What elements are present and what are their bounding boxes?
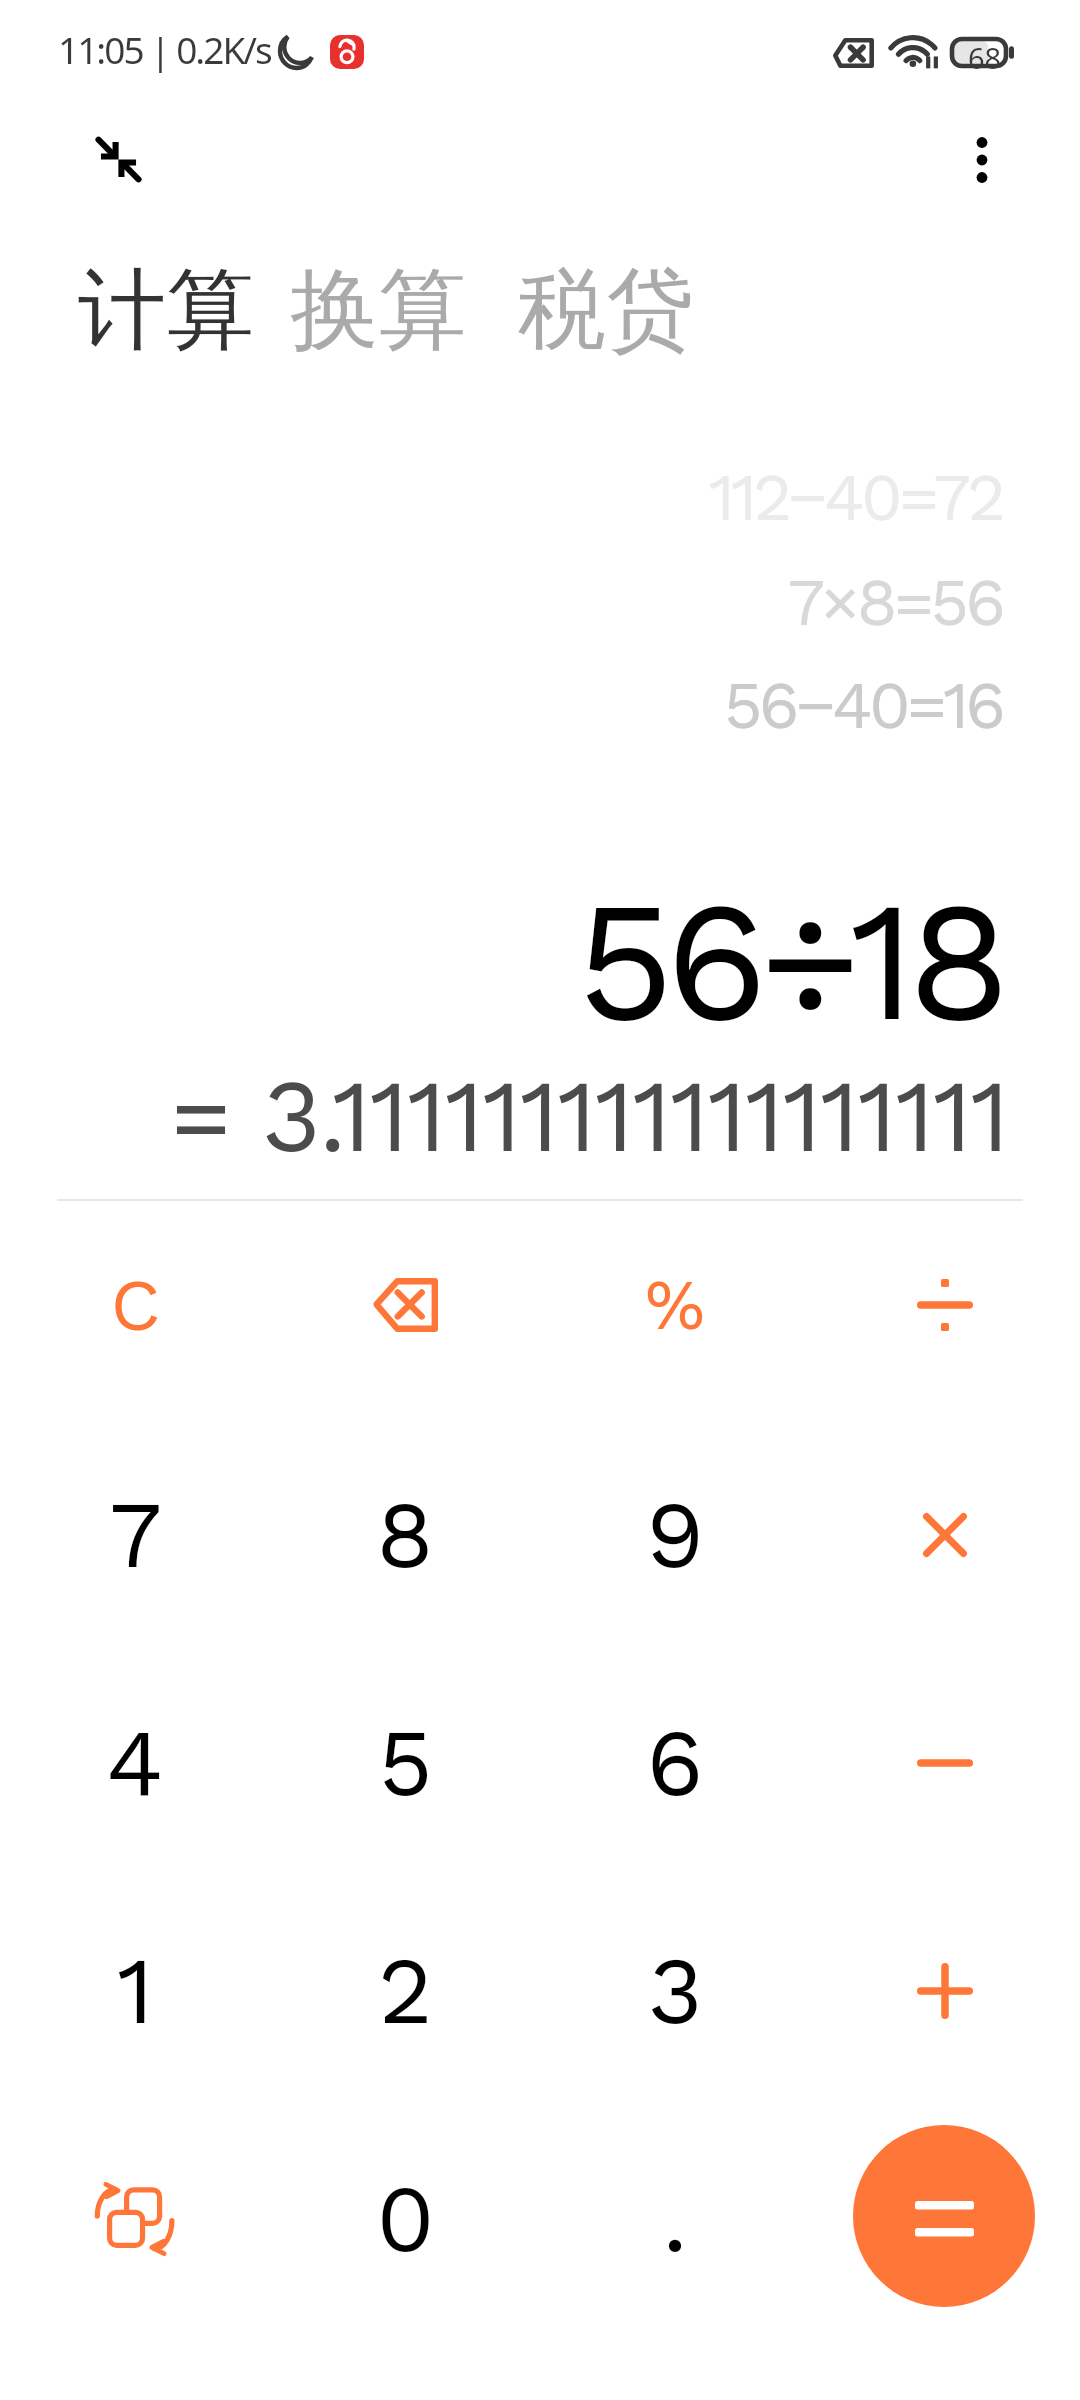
button[interactable]: 0 xyxy=(270,2114,540,2324)
button[interactable]: Backspace xyxy=(270,1200,540,1410)
button[interactable]: Multiply xyxy=(810,1430,1080,1640)
staticText: 5 xyxy=(378,1708,433,1818)
staticText: 56÷18 xyxy=(576,862,1002,1060)
staticText: 56−40=16 xyxy=(723,666,1002,745)
staticText: 换算 xyxy=(290,255,466,366)
staticText: 11:05 | 0.2K/s xyxy=(58,24,271,74)
staticText: 4 xyxy=(106,1708,164,1818)
staticText: 68 xyxy=(968,38,1002,77)
button[interactable]: 9 xyxy=(540,1430,810,1640)
button[interactable]: Divide xyxy=(810,1200,1080,1410)
staticText: C xyxy=(110,1262,161,1348)
staticText: 1 xyxy=(117,1936,154,2046)
staticText: 6 xyxy=(646,1708,704,1818)
staticText: % xyxy=(645,1264,705,1346)
button[interactable]: Minus xyxy=(810,1658,1080,1868)
button[interactable]: Unit conversion xyxy=(0,2114,270,2324)
staticText: 税贷 xyxy=(518,255,694,366)
button[interactable]: Collapse xyxy=(63,104,173,214)
button[interactable]: 7 xyxy=(0,1430,270,1640)
staticText: . xyxy=(662,2164,688,2274)
button[interactable]: 3 xyxy=(540,1886,810,2096)
staticText: 7×8=56 xyxy=(787,563,1002,642)
staticText: 0 xyxy=(376,2164,435,2274)
staticText: 2 xyxy=(378,1936,433,2046)
button[interactable]: More options xyxy=(927,105,1037,215)
button[interactable]: 5 xyxy=(270,1658,540,1868)
button[interactable]: 税贷 xyxy=(500,250,712,370)
button[interactable]: 4 xyxy=(0,1658,270,1868)
button[interactable]: 1 xyxy=(0,1886,270,2096)
button[interactable]: 2 xyxy=(270,1886,540,2096)
staticText: 8 xyxy=(376,1480,434,1590)
staticText: 计算 xyxy=(78,255,254,366)
button[interactable]: 换算 xyxy=(272,250,484,370)
button[interactable]: . xyxy=(540,2114,810,2324)
staticText: 3 xyxy=(648,1936,703,2046)
button[interactable]: 计算 xyxy=(60,250,272,370)
button[interactable]: Equals xyxy=(853,2125,1035,2307)
staticText: 112−40=72 xyxy=(709,458,1002,537)
staticText: 9 xyxy=(646,1480,704,1590)
staticText: 7 xyxy=(109,1480,162,1590)
button[interactable]: Plus xyxy=(810,1886,1080,2096)
button[interactable]: C xyxy=(0,1200,270,1410)
button[interactable]: 6 xyxy=(540,1658,810,1868)
button[interactable]: % xyxy=(540,1200,810,1410)
staticText: = 3.111111111111111111 xyxy=(170,1057,1008,1175)
button[interactable]: 8 xyxy=(270,1430,540,1640)
